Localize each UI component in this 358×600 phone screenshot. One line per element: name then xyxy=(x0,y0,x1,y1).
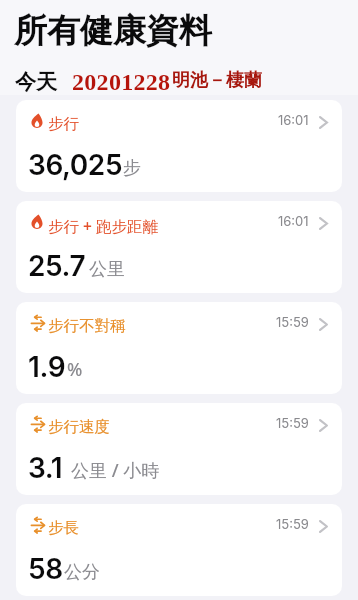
staticText: 15:59 xyxy=(276,314,309,330)
staticText: 步行 xyxy=(48,114,79,134)
button[interactable]: 步行 xyxy=(16,100,342,192)
staticText: 今天 xyxy=(15,69,57,95)
staticText: 16:01 xyxy=(278,213,309,229)
button[interactable]: 步長 xyxy=(16,504,342,596)
staticText: 3.1 xyxy=(28,451,63,485)
staticText: 15:59 xyxy=(276,516,309,532)
staticText: 25.7 xyxy=(28,249,86,283)
staticText: 公里 xyxy=(89,258,125,281)
staticText: 公里 / 小時 xyxy=(71,458,160,483)
staticText: 所有健康資料 xyxy=(14,10,212,52)
staticText: 58 xyxy=(28,552,63,586)
button[interactable]: 步行 + 跑步距離 xyxy=(16,201,342,293)
staticText: 步行速度 xyxy=(48,417,110,437)
staticText: 步 xyxy=(123,157,141,180)
staticText: % xyxy=(67,357,83,382)
staticText: 公分 xyxy=(64,561,100,584)
staticText: 步行 + 跑步距離 xyxy=(48,215,158,236)
staticText: 15:59 xyxy=(276,415,309,431)
staticText: 步長 xyxy=(48,518,79,538)
staticText: 1.9 xyxy=(28,350,66,384)
button[interactable]: 步行不對稱 xyxy=(16,302,342,394)
staticText: 步行不對稱 xyxy=(48,316,126,336)
staticText: 20201228 xyxy=(72,69,171,96)
button[interactable]: 步行速度 xyxy=(16,403,342,495)
staticText: 16:01 xyxy=(278,112,309,128)
staticText: 明池－棲蘭 xyxy=(172,69,262,92)
staticText: 36,025 xyxy=(28,148,123,182)
